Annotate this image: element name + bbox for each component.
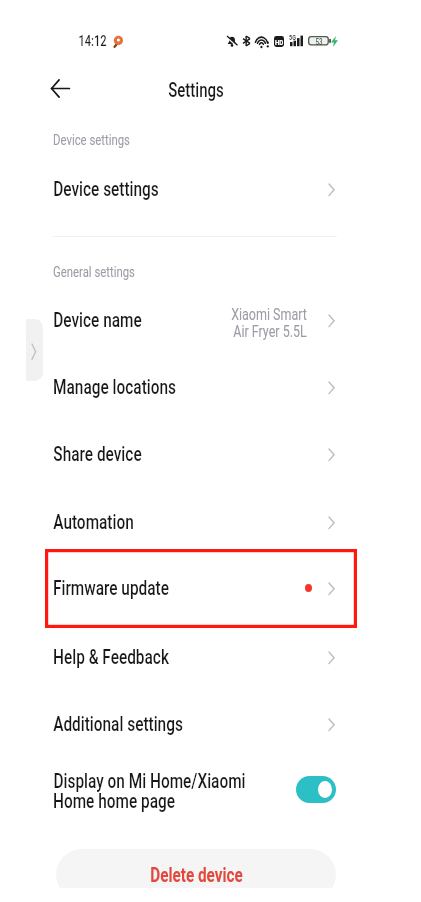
staticText: 53 [315, 37, 323, 46]
staticText: Home home page [53, 789, 175, 813]
button[interactable]: Share device [45, 421, 357, 487]
staticText: Share device [53, 442, 142, 466]
staticText: Manage locations [53, 375, 176, 399]
staticText: 5G [289, 33, 296, 41]
staticText: Settings [168, 78, 224, 102]
staticText: Additional settings [53, 712, 183, 736]
button[interactable]: Display on home page, on [296, 776, 336, 803]
staticText: HD [275, 37, 284, 46]
staticText: Device settings [53, 131, 130, 148]
staticText: Device settings [53, 177, 159, 201]
button[interactable]: Back [40, 69, 81, 108]
button[interactable]: Device settings [45, 156, 357, 222]
button[interactable]: Open side bar [26, 319, 43, 381]
staticText: Help & Feedback [53, 645, 169, 669]
staticText: Delete device [150, 863, 243, 887]
staticText: Firmware update [53, 576, 169, 600]
button[interactable]: Additional settings [45, 691, 357, 757]
staticText: Device name [53, 308, 142, 332]
staticText: Xiaomi Smart [231, 305, 307, 324]
button[interactable]: Firmware update [45, 555, 357, 621]
button[interactable]: Device name [45, 287, 357, 353]
staticText: Display on Mi Home/Xiaomi [53, 769, 246, 793]
button[interactable]: Manage locations [45, 354, 357, 420]
button[interactable]: Delete device [56, 849, 336, 900]
staticText: Air Fryer 5.5L [233, 322, 307, 341]
staticText: Automation [53, 510, 134, 534]
staticText: General settings [53, 263, 135, 280]
button[interactable]: Display on Mi Home/Xiaomi [45, 757, 357, 823]
button[interactable]: Automation [45, 489, 357, 555]
staticText: 14:12 [78, 33, 107, 50]
button[interactable]: Help & Feedback [45, 624, 357, 690]
